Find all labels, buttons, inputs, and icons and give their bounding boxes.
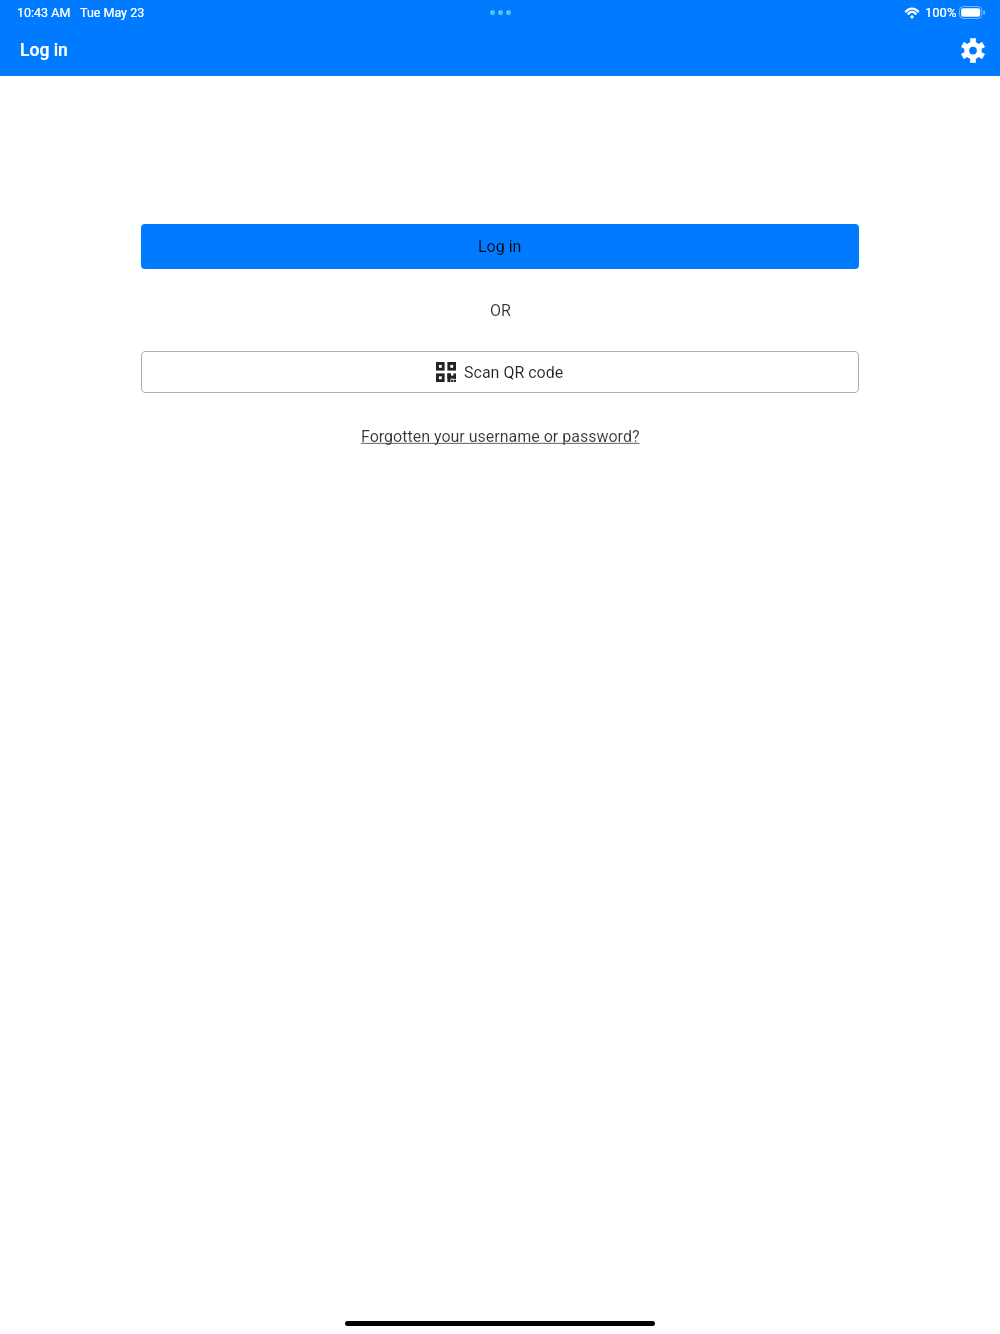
staticText: Log in xyxy=(478,237,522,256)
button[interactable]: Log in xyxy=(141,224,859,269)
staticText: Scan QR code xyxy=(464,363,564,382)
button[interactable]: Forgotten your username or password? xyxy=(355,419,646,454)
staticText: Log in xyxy=(20,40,68,61)
button[interactable]: Scan QR code xyxy=(141,351,859,393)
staticText: OR xyxy=(490,301,511,320)
staticText: Tue May 23 xyxy=(80,5,145,20)
staticText: Forgotten your username or password? xyxy=(361,427,640,446)
button[interactable]: Settings xyxy=(951,28,995,72)
staticText: 100% xyxy=(925,5,957,20)
staticText: 10:43 AM xyxy=(17,5,71,20)
